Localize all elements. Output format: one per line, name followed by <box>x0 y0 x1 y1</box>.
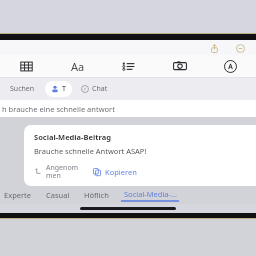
button[interactable]: T <box>45 81 72 97</box>
staticText: Social-Media-... <box>124 189 177 199</box>
staticText: Aa <box>71 59 85 74</box>
button[interactable]: Angenom men <box>34 163 79 180</box>
button[interactable]: Minimieren <box>234 42 246 54</box>
staticText: Chat <box>92 84 108 94</box>
button[interactable]: camera <box>154 55 205 77</box>
staticText: Casual <box>46 190 70 200</box>
staticText: Suchen <box>10 84 35 94</box>
button[interactable]: h brauche eine schnelle antwort <box>0 100 256 117</box>
staticText: Brauche schnelle Antwort ASAP! <box>34 146 147 156</box>
button[interactable]: list <box>103 55 154 77</box>
button[interactable]: circleA <box>205 55 256 77</box>
button[interactable]: Social-Media-... <box>121 189 179 202</box>
button[interactable]: Social-Media-Beitrag <box>24 125 256 186</box>
button[interactable]: Kopieren <box>93 167 137 177</box>
staticText: Experte <box>4 190 32 200</box>
button[interactable]: Chat <box>78 82 111 96</box>
button[interactable]: table <box>0 55 52 77</box>
staticText: h brauche eine schnelle antwort <box>2 104 115 114</box>
staticText: Höflich <box>84 190 109 200</box>
button[interactable]: Suchen <box>6 82 39 96</box>
button[interactable]: Höflich <box>82 190 111 200</box>
staticText: Kopieren <box>105 167 137 177</box>
staticText: Angenom men <box>46 163 79 180</box>
button[interactable]: aa <box>52 55 103 77</box>
staticText: Social-Media-Beitrag <box>34 132 111 142</box>
button[interactable]: Experte <box>2 190 34 200</box>
button[interactable]: Casual <box>44 190 72 200</box>
button[interactable]: Teilen <box>208 42 220 54</box>
staticText: T <box>62 84 66 94</box>
